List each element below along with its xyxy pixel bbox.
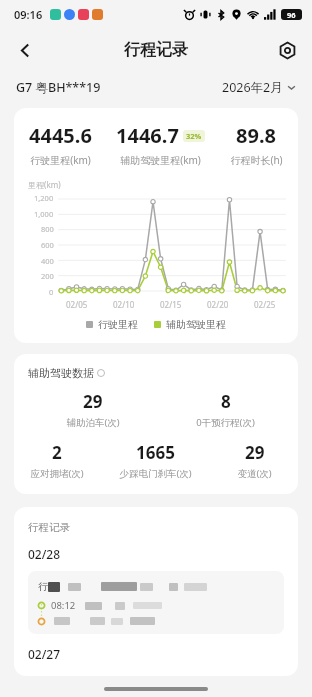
staticText: 2026年2月 (222, 79, 283, 96)
staticText: 辅助驾驶里程 (166, 318, 226, 331)
staticText: 行程记录 (28, 521, 70, 534)
staticText: 02/25 (254, 299, 276, 310)
staticText: 变道(次) (237, 467, 272, 480)
staticText: 辅助泊车(次) (66, 416, 120, 429)
staticText: 2 (52, 441, 62, 464)
staticText: 辅助驾驶里程(km) (120, 153, 201, 167)
staticText: 1446.7 (116, 122, 179, 149)
staticText: 32% (186, 131, 202, 141)
button[interactable]: Settings (270, 33, 304, 67)
staticText: 29 (245, 441, 265, 464)
staticText: 02/28 (28, 546, 61, 562)
staticText: 02/20 (207, 299, 229, 310)
staticText: 08:12 (51, 599, 76, 612)
button[interactable]: 2026年2月 (222, 79, 296, 96)
staticText: 800 (41, 224, 54, 234)
staticText: 96 (287, 10, 296, 20)
staticText: 02/05 (66, 299, 88, 310)
staticText: 4445.6 (29, 122, 92, 149)
staticText: 行程时长(h) (230, 153, 283, 167)
staticText: 行驶里程 (98, 318, 138, 331)
staticText: 应对拥堵(次) (30, 467, 84, 480)
staticText: 0干预行程(次) (196, 416, 255, 429)
staticText: 29 (83, 390, 103, 413)
staticText: 1665 (136, 441, 175, 464)
staticText: 02/15 (160, 299, 182, 310)
staticText: 1,200 (34, 193, 54, 203)
staticText: 行 (38, 580, 48, 593)
staticText: 8 (221, 390, 231, 413)
staticText: 行驶里程(km) (30, 153, 91, 167)
staticText: 400 (41, 256, 54, 266)
staticText: 里程(km) (28, 179, 61, 190)
staticText: 少踩电门刹车(次) (119, 467, 192, 480)
staticText: G7 粤BH***19 (16, 79, 101, 96)
staticText: 89.8 (236, 122, 276, 149)
staticText: 02/27 (28, 646, 61, 662)
staticText: 09:16 (14, 7, 43, 22)
button[interactable]: 行 (28, 571, 284, 634)
staticText: 1,000 (34, 209, 54, 219)
staticText: 600 (41, 240, 54, 250)
staticText: 02/10 (113, 299, 135, 310)
staticText: 行程记录 (124, 40, 188, 60)
button[interactable]: Back (8, 33, 42, 67)
staticText: 0 (49, 287, 54, 297)
staticText: 200 (41, 271, 54, 281)
staticText: 辅助驾驶数据 (28, 366, 94, 380)
